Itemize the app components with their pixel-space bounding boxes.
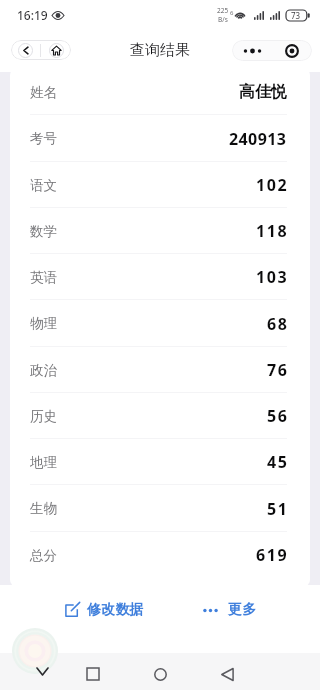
staticText: 51 [267,498,289,520]
staticText: 240913 [229,128,287,150]
staticText: B/s [218,15,228,24]
button[interactable]: Close [272,40,312,61]
staticText: 225 [217,6,229,15]
button[interactable]: Back [11,40,40,60]
staticText: 数学 [30,223,57,240]
staticText: 修改数据 [87,601,144,619]
staticText: 语文 [30,177,57,194]
staticText: 68 [267,313,289,335]
staticText: 76 [267,359,289,381]
staticText: 更多 [228,601,257,619]
button[interactable]: 总分 [10,532,310,578]
button[interactable]: 修改数据 [59,595,150,625]
button[interactable]: Home [41,40,71,60]
staticText: 高佳悦 [239,82,287,102]
button[interactable]: 姓名 [10,69,310,115]
button[interactable]: 语文 [10,162,310,208]
staticText: 姓名 [30,84,57,101]
staticText: 考号 [30,130,57,147]
button[interactable]: 英语 [10,254,310,300]
staticText: 政治 [30,362,57,379]
staticText: 生物 [30,500,57,517]
staticText: 118 [256,220,289,242]
button[interactable]: 物理 [10,300,310,347]
staticText: 73 [291,10,301,21]
button[interactable]: 更多 [200,595,263,625]
staticText: 16:19 [17,7,48,23]
button[interactable]: Back [210,657,244,690]
button[interactable]: 生物 [10,485,310,532]
staticText: 103 [256,266,289,288]
button[interactable]: Home [143,657,177,690]
button[interactable]: 历史 [10,393,310,439]
staticText: 总分 [30,547,57,564]
staticText: 历史 [30,408,57,425]
staticText: 6 [230,9,234,17]
button[interactable]: 地理 [10,439,310,485]
staticText: 102 [256,174,289,196]
staticText: 45 [267,451,289,473]
button[interactable]: 政治 [10,347,310,393]
button[interactable]: 考号 [10,115,310,162]
button[interactable]: More options [232,40,272,61]
staticText: 英语 [30,269,57,286]
button[interactable]: 数学 [10,208,310,254]
staticText: 查询结果 [130,41,190,60]
button[interactable]: Recents [76,657,110,690]
staticText: 619 [256,544,289,566]
staticText: 物理 [30,315,57,332]
staticText: 地理 [30,454,57,471]
staticText: 56 [267,405,289,427]
